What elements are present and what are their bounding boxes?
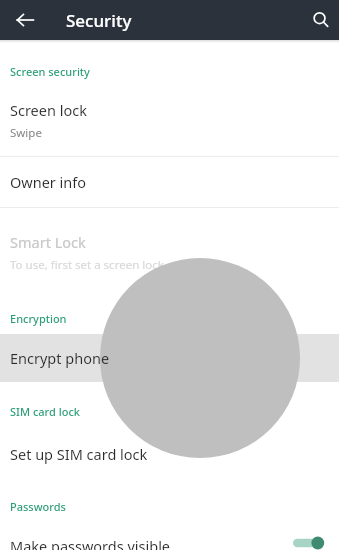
button[interactable]: Make passwords visible toggle, on bbox=[293, 536, 329, 550]
button[interactable]: Make passwords visible bbox=[0, 536, 339, 550]
button[interactable]: Encrypt phone bbox=[0, 334, 339, 382]
staticText: Swipe bbox=[10, 125, 42, 141]
button[interactable]: Navigate up bbox=[14, 9, 36, 31]
staticText: Passwords bbox=[10, 499, 66, 514]
button[interactable]: Search bbox=[308, 7, 334, 33]
staticText: Encryption bbox=[10, 311, 67, 326]
button[interactable]: Set up SIM card lock bbox=[0, 441, 339, 467]
staticText: SIM card lock bbox=[10, 404, 80, 419]
staticText: Screen lock bbox=[10, 100, 87, 120]
button[interactable]: Owner info bbox=[0, 157, 339, 207]
staticText: Owner info bbox=[10, 172, 87, 192]
staticText: Smart Lock bbox=[10, 232, 86, 252]
staticText: Make passwords visible bbox=[10, 536, 293, 550]
staticText: Security bbox=[66, 9, 132, 32]
button[interactable]: Screen lock bbox=[0, 100, 339, 141]
staticText: Set up SIM card lock bbox=[10, 444, 148, 464]
staticText: Encrypt phone bbox=[10, 348, 110, 368]
staticText: Screen security bbox=[10, 64, 90, 79]
staticText: To use, first set a screen lock bbox=[10, 257, 164, 273]
